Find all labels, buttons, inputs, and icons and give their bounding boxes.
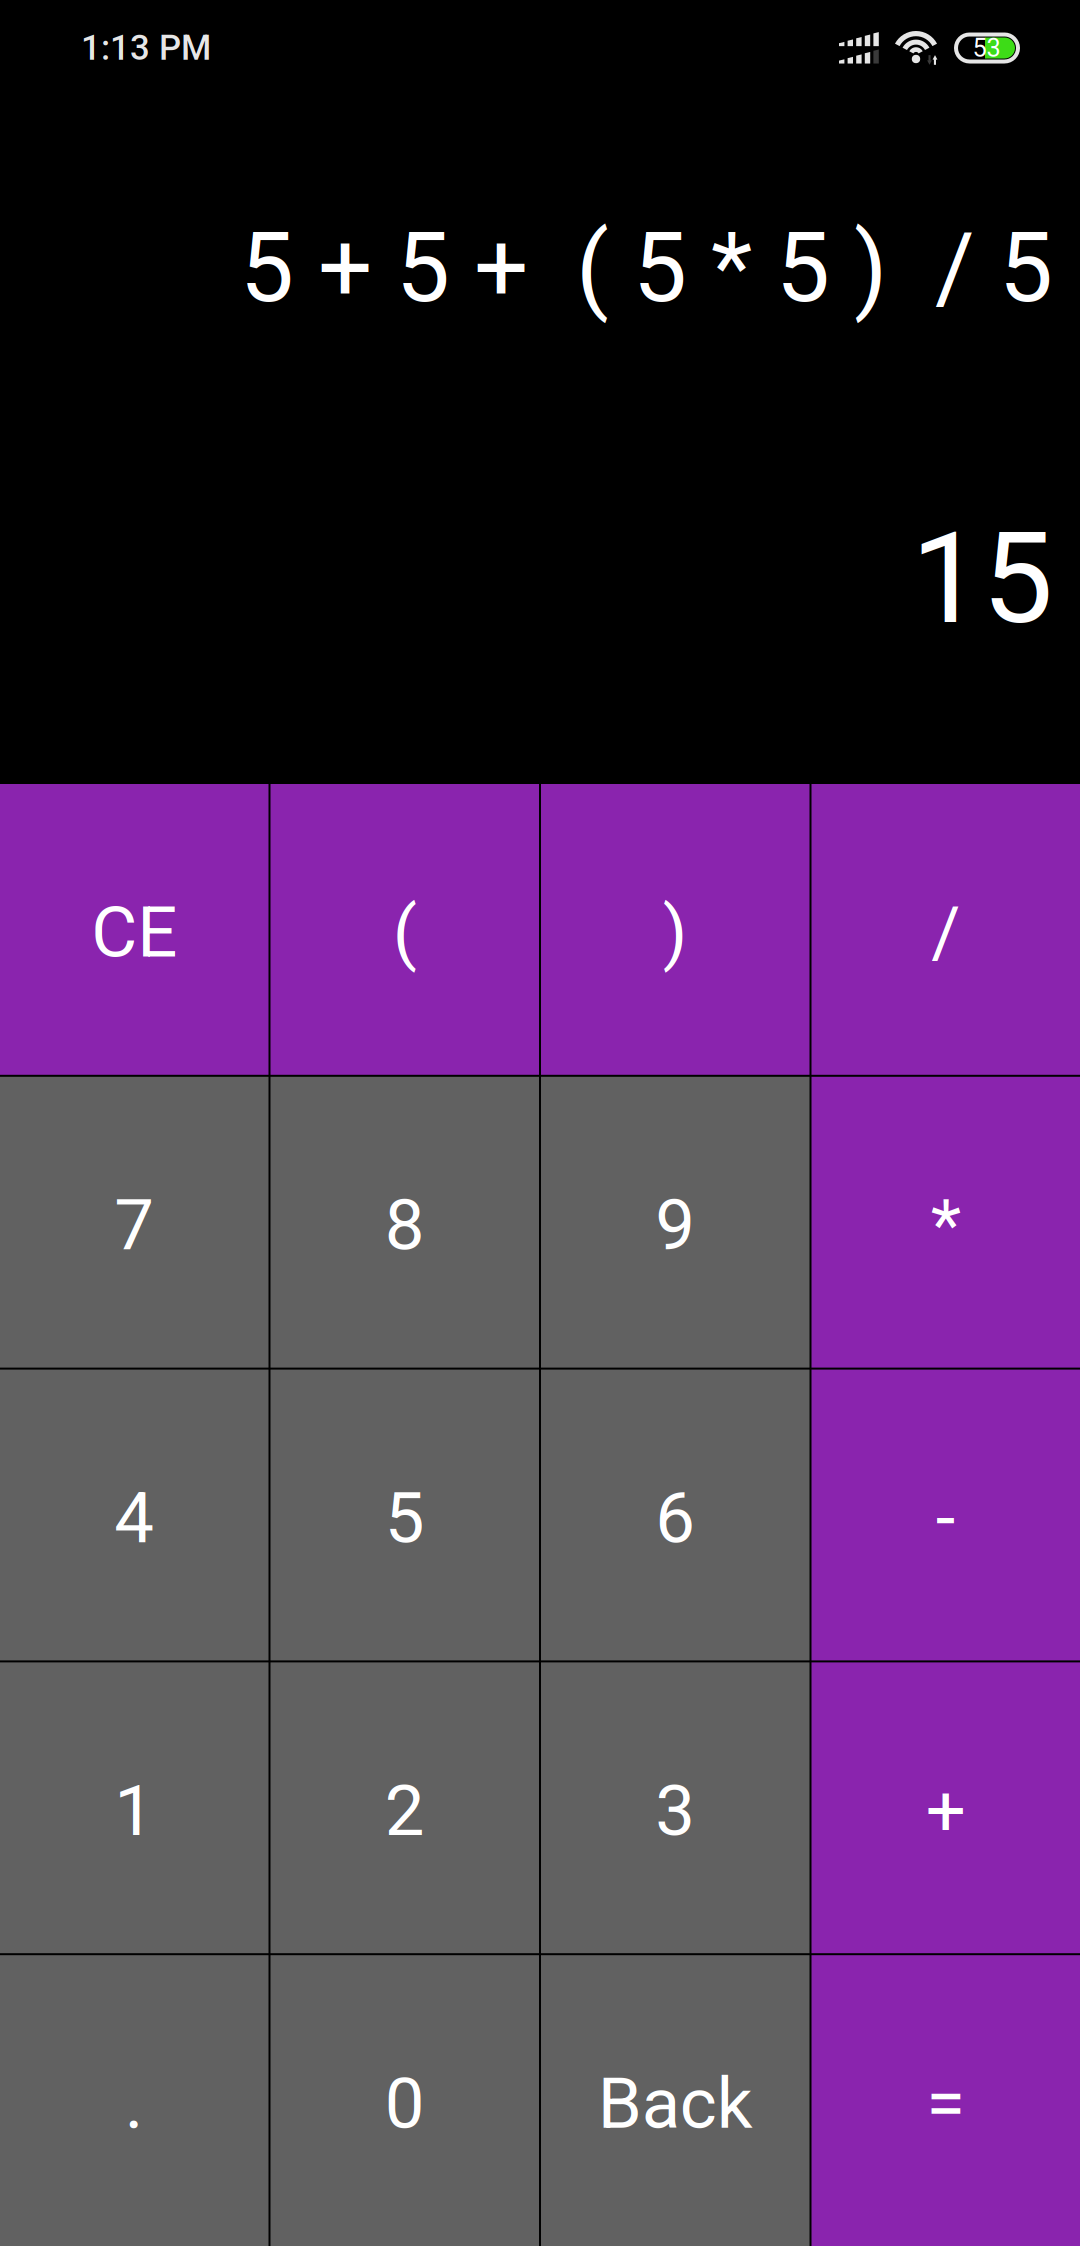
button[interactable]: Back bbox=[541, 1955, 809, 2246]
staticText: 0 bbox=[385, 2062, 425, 2145]
button[interactable]: + bbox=[811, 1662, 1080, 1953]
button[interactable]: 0 bbox=[270, 1955, 539, 2246]
button[interactable]: * bbox=[811, 1077, 1080, 1368]
button[interactable]: 1 bbox=[0, 1662, 268, 1953]
staticText: 6 bbox=[655, 1477, 695, 1559]
staticText: + bbox=[926, 1769, 966, 1852]
staticText: / bbox=[931, 891, 960, 974]
staticText: 8 bbox=[385, 1184, 425, 1267]
button[interactable]: 3 bbox=[541, 1662, 809, 1953]
staticText: Back bbox=[598, 2062, 753, 2145]
button[interactable]: ( bbox=[270, 784, 539, 1075]
staticText: ( bbox=[393, 891, 417, 974]
staticText: 1:13 PM bbox=[81, 28, 211, 68]
staticText: 5 + 5 + ( 5 * 5 ) / 5 bbox=[240, 212, 1053, 324]
staticText: - bbox=[936, 1477, 956, 1559]
staticText: 2 bbox=[385, 1769, 425, 1852]
staticText: 3 bbox=[655, 1769, 695, 1852]
staticText: . bbox=[125, 2062, 144, 2145]
button[interactable]: - bbox=[811, 1370, 1080, 1660]
staticText: 4 bbox=[114, 1477, 154, 1559]
button[interactable]: / bbox=[811, 784, 1080, 1075]
button[interactable]: 8 bbox=[270, 1077, 539, 1368]
button[interactable]: CE bbox=[0, 784, 268, 1075]
staticText: 53 bbox=[972, 33, 1000, 63]
button[interactable]: 4 bbox=[0, 1370, 268, 1660]
button[interactable]: 6 bbox=[541, 1370, 809, 1660]
staticText: 5 bbox=[385, 1477, 425, 1559]
staticText: = bbox=[926, 2062, 965, 2145]
staticText: 9 bbox=[655, 1184, 695, 1267]
button[interactable]: = bbox=[811, 1955, 1080, 2246]
button[interactable]: ) bbox=[541, 784, 809, 1075]
button[interactable]: 2 bbox=[270, 1662, 539, 1953]
staticText: 7 bbox=[114, 1184, 154, 1267]
button[interactable]: 9 bbox=[541, 1077, 809, 1368]
button[interactable]: . bbox=[0, 1955, 268, 2246]
staticText: 15 bbox=[911, 504, 1053, 653]
staticText: CE bbox=[91, 891, 177, 974]
button[interactable]: 7 bbox=[0, 1077, 268, 1368]
button[interactable]: 5 bbox=[270, 1370, 539, 1660]
staticText: * bbox=[931, 1184, 961, 1267]
staticText: ) bbox=[663, 891, 688, 974]
staticText: 1 bbox=[114, 1769, 154, 1852]
